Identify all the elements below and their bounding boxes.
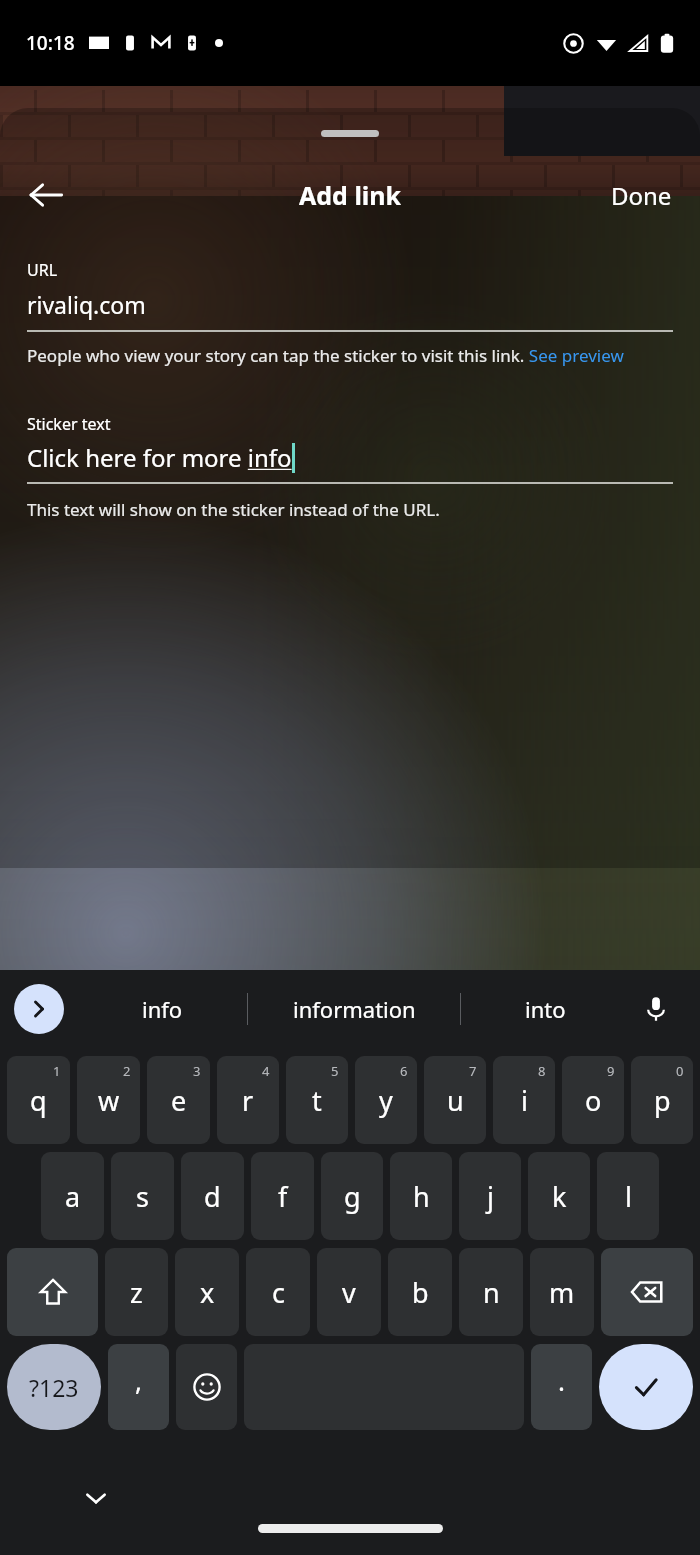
button[interactable]: k [528, 1152, 590, 1240]
button[interactable]: e [147, 1056, 210, 1144]
button[interactable]: ?123 [7, 1344, 101, 1430]
button[interactable]: , [108, 1344, 169, 1430]
staticText: e [171, 1082, 187, 1119]
staticText: information [293, 994, 416, 1024]
staticText: 9 [607, 1062, 615, 1080]
button[interactable]: Shift [7, 1248, 98, 1336]
button[interactable]: n [459, 1248, 523, 1336]
staticText: Click here for more info [27, 441, 292, 474]
staticText: c [272, 1274, 285, 1311]
button[interactable]: j [459, 1152, 521, 1240]
staticText: k [552, 1178, 567, 1215]
button[interactable]: Back [14, 163, 78, 227]
staticText: rivaliq.com [27, 289, 146, 320]
staticText: 1 [53, 1062, 61, 1080]
button[interactable]: v [317, 1248, 381, 1336]
button[interactable]: Backspace [601, 1248, 693, 1336]
staticText: l [625, 1178, 632, 1215]
button[interactable]: o [562, 1056, 624, 1144]
button[interactable]: l [597, 1152, 659, 1240]
staticText: 6 [400, 1062, 408, 1080]
button[interactable]: Enter [599, 1344, 693, 1430]
staticText: h [413, 1178, 430, 1215]
staticText: URL [27, 259, 58, 281]
staticText: p [654, 1082, 671, 1119]
staticText: m [549, 1274, 575, 1311]
button[interactable]: g [321, 1152, 383, 1240]
staticText: f [278, 1178, 288, 1215]
staticText: This text will show on the sticker inste… [27, 498, 440, 521]
staticText: r [242, 1082, 254, 1119]
button[interactable]: More suggestions [14, 984, 64, 1034]
staticText: People who view your story can tap the s… [27, 344, 624, 367]
staticText: j [487, 1178, 494, 1215]
button[interactable]: b [388, 1248, 452, 1336]
button[interactable]: x [175, 1248, 239, 1336]
staticText: y [379, 1082, 393, 1119]
button[interactable]: p [631, 1056, 693, 1144]
staticText: Sticker text [27, 413, 111, 435]
staticText: a [65, 1178, 81, 1215]
staticText: , [135, 1363, 142, 1398]
staticText: q [30, 1082, 47, 1119]
staticText: w [98, 1082, 120, 1119]
staticText: u [447, 1082, 464, 1119]
button[interactable]: r [217, 1056, 279, 1144]
staticText: 3 [193, 1062, 201, 1080]
button[interactable]: i [493, 1056, 555, 1144]
staticText: o [585, 1082, 602, 1119]
button[interactable]: . [531, 1344, 592, 1430]
button[interactable]: Hide keyboard [72, 1474, 120, 1522]
staticText: info [142, 994, 183, 1024]
staticText: b [412, 1274, 429, 1311]
button[interactable]: h [390, 1152, 452, 1240]
staticText: x [200, 1274, 215, 1311]
button[interactable]: info [78, 994, 247, 1024]
staticText: g [344, 1178, 361, 1215]
staticText: 10:18 [26, 30, 75, 56]
button[interactable]: w [77, 1056, 140, 1144]
button[interactable]: z [105, 1248, 168, 1336]
button[interactable]: into [461, 994, 630, 1024]
button[interactable]: c [246, 1248, 310, 1336]
button[interactable]: Done [595, 169, 688, 222]
staticText: t [312, 1082, 322, 1119]
staticText: 0 [676, 1062, 684, 1080]
staticText: 4 [262, 1062, 270, 1080]
staticText: z [130, 1274, 143, 1311]
button[interactable]: u [424, 1056, 486, 1144]
staticText: 5 [331, 1062, 339, 1080]
staticText: Add link [299, 178, 402, 212]
button[interactable]: q [7, 1056, 70, 1144]
staticText: 7 [469, 1062, 477, 1080]
staticText: . [558, 1363, 565, 1398]
staticText: Done [611, 179, 672, 212]
staticText: 2 [123, 1062, 131, 1080]
button[interactable]: information [248, 994, 460, 1024]
button[interactable]: a [41, 1152, 104, 1240]
staticText: ?123 [29, 1372, 79, 1403]
staticText: into [525, 994, 566, 1024]
button[interactable]: f [251, 1152, 314, 1240]
button[interactable]: Emoji [176, 1344, 237, 1430]
button[interactable]: s [111, 1152, 174, 1240]
staticText: s [136, 1178, 149, 1215]
button[interactable]: Click here for more info [27, 441, 673, 474]
staticText: v [342, 1274, 356, 1311]
button[interactable]: t [286, 1056, 348, 1144]
button[interactable]: d [181, 1152, 244, 1240]
button[interactable]: rivaliq.com [27, 289, 673, 320]
staticText: 8 [538, 1062, 546, 1080]
staticText: i [521, 1082, 528, 1119]
staticText: n [483, 1274, 500, 1311]
button[interactable]: y [355, 1056, 417, 1144]
staticText: d [204, 1178, 221, 1215]
button[interactable]: Voice input [630, 983, 682, 1035]
button[interactable]: m [530, 1248, 594, 1336]
